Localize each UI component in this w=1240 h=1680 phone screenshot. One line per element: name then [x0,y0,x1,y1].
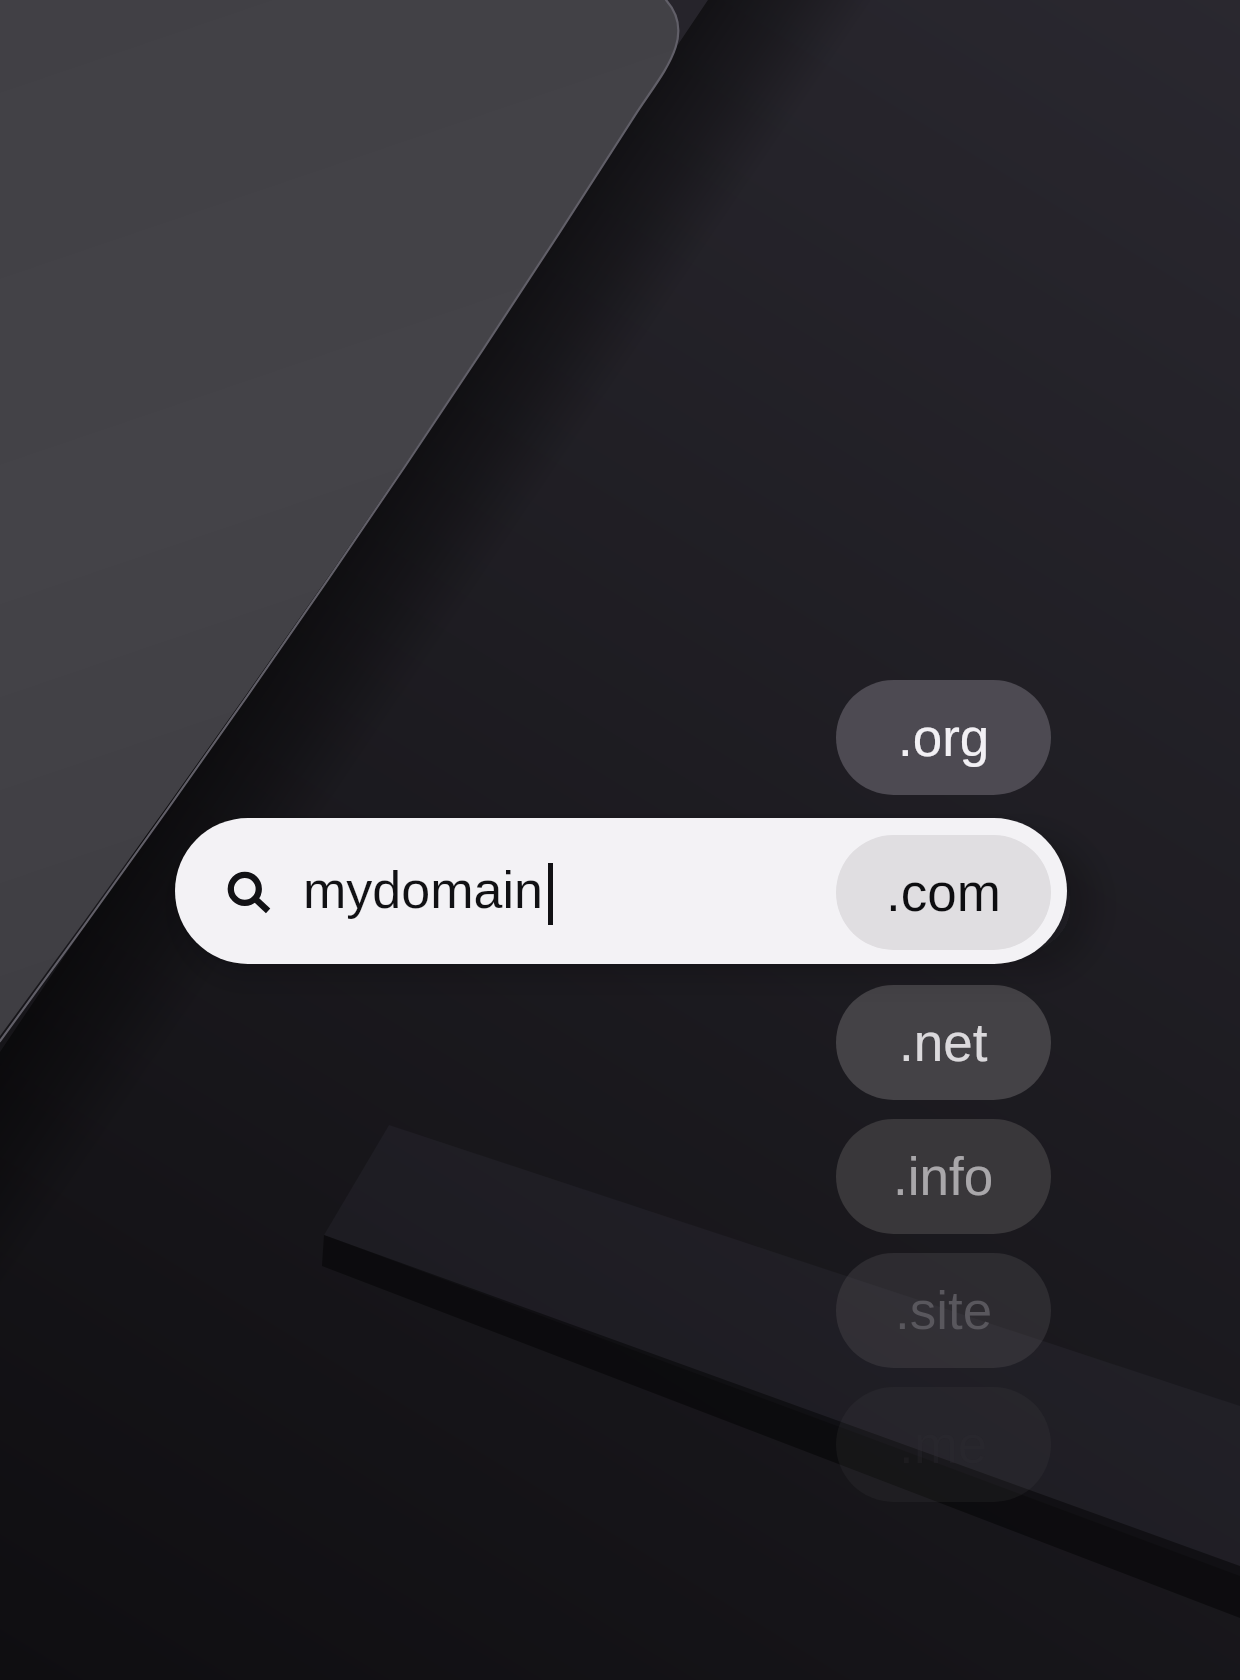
button[interactable]: .org [836,680,1051,795]
other: Search [220,864,270,914]
button[interactable]: .net [836,985,1051,1100]
button[interactable]: .info [836,1119,1051,1234]
staticText: mydomain [303,861,543,919]
staticText: .net [899,1013,988,1072]
staticText: .com [886,863,1001,922]
staticText: .info [893,1147,994,1206]
button[interactable]: .com [836,835,1051,950]
staticText: .site [895,1281,993,1340]
staticText: .org [898,708,990,767]
button[interactable]: .site [836,1253,1051,1368]
staticText: .me [899,1415,988,1474]
button[interactable]: Search [175,818,1067,964]
button[interactable]: .me [836,1387,1051,1502]
